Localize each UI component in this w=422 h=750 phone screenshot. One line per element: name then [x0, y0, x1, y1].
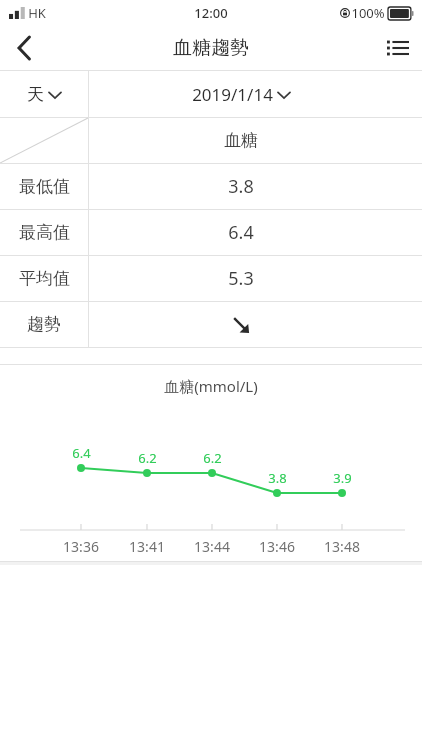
staticText: 3.8: [228, 174, 254, 199]
staticText: 13:36: [63, 537, 99, 556]
staticText: 13:44: [194, 537, 230, 556]
staticText: 血糖: [224, 130, 258, 151]
staticText: 100%: [351, 4, 385, 22]
button[interactable]: List menu: [374, 25, 422, 70]
button[interactable]: 趨勢: [0, 302, 422, 347]
staticText: 天: [27, 84, 44, 105]
staticText: 血糖(mmol/L): [164, 376, 258, 396]
staticText: 3.9: [333, 469, 352, 487]
button[interactable]: 最低值: [0, 164, 422, 209]
button[interactable]: Back: [0, 25, 48, 70]
staticText: 趨勢: [27, 314, 61, 335]
staticText: 2019/1/14: [192, 83, 273, 106]
button[interactable]: 最高值: [0, 210, 422, 255]
staticText: 最低值: [19, 176, 70, 197]
staticText: 13:46: [259, 537, 295, 556]
other: Trend decreasing: [232, 316, 250, 334]
button[interactable]: 天: [0, 71, 88, 117]
staticText: 13:48: [324, 537, 360, 556]
staticText: 6.2: [203, 449, 222, 467]
staticText: 12:00: [194, 4, 228, 22]
staticText: 6.4: [228, 220, 254, 245]
staticText: 血糖趨勢: [173, 36, 249, 60]
staticText: 平均值: [19, 268, 70, 289]
staticText: HK: [28, 4, 46, 22]
staticText: 最高值: [19, 222, 70, 243]
staticText: 13:41: [129, 537, 165, 556]
button[interactable]: 平均值: [0, 256, 422, 301]
button[interactable]: 2019/1/14: [89, 71, 422, 117]
staticText: 3.8: [268, 469, 287, 487]
staticText: 6.4: [72, 444, 91, 462]
staticText: 5.3: [228, 266, 254, 291]
staticText: 6.2: [138, 449, 157, 467]
